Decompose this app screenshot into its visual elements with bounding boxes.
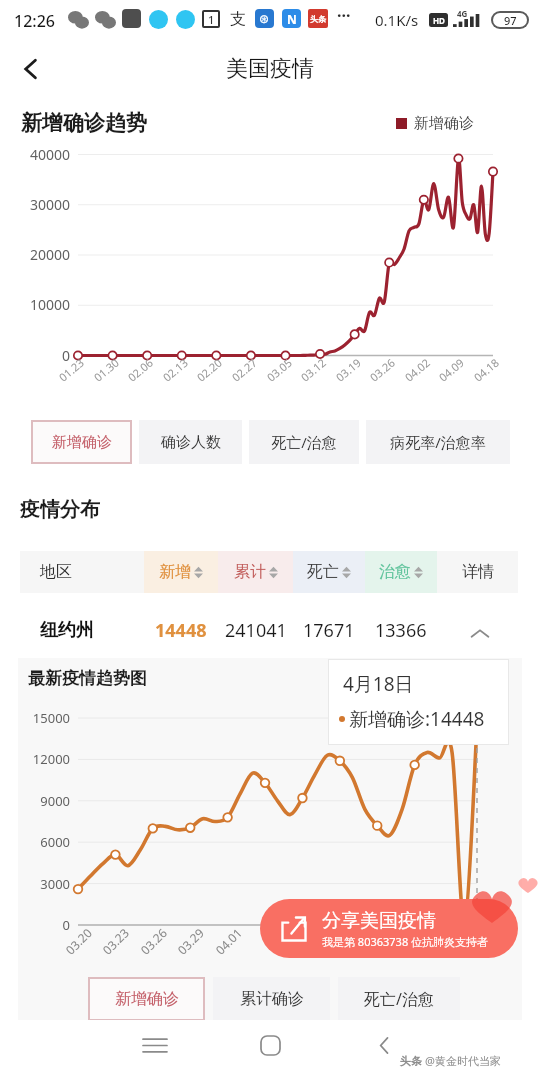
staticText: 纽约州	[40, 619, 94, 642]
staticText: 支	[230, 9, 246, 29]
button[interactable]: 纽约州	[20, 605, 518, 655]
staticText: 美国疫情	[0, 55, 540, 83]
staticText: 03.20	[62, 924, 95, 958]
staticText: ⊛	[259, 12, 270, 26]
staticText: 13366	[375, 618, 427, 643]
button[interactable]: 确诊人数	[139, 420, 242, 464]
staticText: 15000	[18, 709, 70, 727]
staticText: 新增确诊趋势	[21, 110, 147, 136]
staticText: 新增确诊:14448	[349, 706, 485, 732]
staticText: 02.06	[125, 354, 156, 384]
button[interactable]: 病死率/治愈率	[366, 420, 510, 464]
staticText: 04.09	[436, 354, 467, 384]
button[interactable]: 分享美国疫情	[260, 899, 518, 958]
staticText: 03.05	[264, 354, 295, 384]
staticText: 0	[18, 916, 70, 934]
staticText: 20000	[0, 245, 70, 264]
staticText: 02.20	[194, 354, 225, 384]
staticText: 12000	[18, 750, 70, 768]
staticText: 03.19	[333, 354, 364, 384]
staticText: 头条	[310, 14, 326, 24]
staticText: 03.29	[174, 924, 207, 958]
staticText: 03.23	[99, 924, 132, 958]
staticText: 4月18日	[343, 671, 414, 697]
staticText: 病死率/治愈率	[390, 432, 486, 452]
staticText: 02.13	[160, 354, 191, 384]
button[interactable]: 新增确诊	[88, 977, 205, 1021]
staticText: 详情	[462, 562, 494, 582]
staticText: 40000	[0, 145, 70, 164]
staticText: 累计确诊	[240, 989, 304, 1009]
staticText: 头条	[400, 1054, 422, 1068]
staticText: 04.02	[402, 354, 433, 384]
staticText: 9000	[18, 792, 70, 810]
staticText: 04.18	[471, 354, 502, 384]
staticText: 12:26	[14, 10, 55, 32]
button[interactable]: 新增确诊	[31, 420, 132, 464]
staticText: @黄金时代当家	[425, 1053, 501, 1068]
staticText: 17671	[303, 618, 355, 643]
staticText: 30000	[0, 195, 70, 214]
button[interactable]: 死亡/治愈	[338, 977, 460, 1021]
staticText: 死亡/治愈	[364, 988, 434, 1010]
staticText: N	[287, 11, 297, 27]
staticText: 新增	[159, 562, 191, 582]
staticText: 6000	[18, 833, 70, 851]
staticText: 治愈	[379, 562, 411, 582]
staticText: 03.12	[298, 354, 329, 384]
staticText: 新增确诊	[414, 114, 474, 133]
button[interactable]: Back	[8, 46, 54, 92]
staticText: ···	[337, 4, 351, 26]
staticText: 地区	[40, 562, 72, 582]
staticText: 新增确诊	[115, 989, 179, 1009]
staticText: 03.26	[367, 354, 398, 384]
staticText: 1	[208, 12, 215, 27]
staticText: 累计	[234, 562, 266, 582]
button[interactable]: Back	[362, 1023, 406, 1067]
button[interactable]: 累计确诊	[213, 977, 330, 1021]
staticText: 死亡/治愈	[271, 432, 337, 452]
button[interactable]: 死亡/治愈	[249, 420, 359, 464]
staticText: 我是第 80363738 位抗肺炎支持者	[322, 934, 489, 949]
staticText: 04.01	[212, 924, 245, 958]
staticText: 241041	[225, 618, 287, 643]
staticText: 疫情分布	[20, 497, 100, 522]
staticText: 02.27	[229, 354, 260, 384]
staticText: 01.23	[56, 354, 87, 384]
staticText: 新增确诊	[52, 433, 112, 452]
staticText: 3000	[18, 875, 70, 893]
staticText: 01.30	[91, 354, 122, 384]
staticText: 97	[504, 13, 517, 27]
staticText: 确诊人数	[161, 433, 221, 452]
staticText: 分享美国疫情	[322, 909, 436, 933]
staticText: 03.26	[137, 924, 170, 958]
staticText: 4G	[457, 8, 468, 19]
staticText: 死亡	[307, 562, 339, 582]
button[interactable]: Recents	[133, 1023, 177, 1067]
staticText: 最新疫情趋势图	[28, 668, 147, 689]
staticText: 0.1K/s	[375, 10, 419, 30]
staticText: HD	[433, 15, 445, 26]
staticText: 14448	[155, 618, 207, 643]
button[interactable]: Home	[248, 1023, 292, 1067]
staticText: 0	[0, 346, 70, 365]
staticText: 10000	[0, 295, 70, 314]
